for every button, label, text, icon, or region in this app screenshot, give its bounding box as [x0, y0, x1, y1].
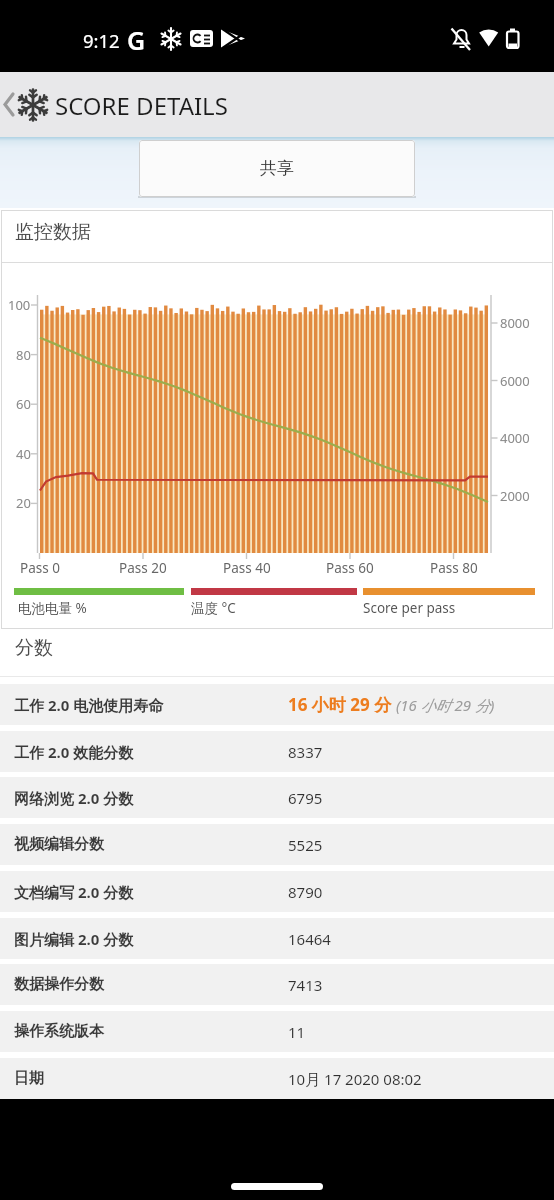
button[interactable]: 视频编辑分数 — [0, 824, 554, 865]
staticText: 8790 — [288, 882, 323, 902]
staticText: 9:12 — [83, 28, 120, 53]
staticText: 8000 — [500, 314, 530, 332]
staticText: 60 — [16, 395, 31, 413]
staticText: 80 — [16, 346, 31, 364]
button[interactable]: 数据操作分数 — [0, 964, 554, 1005]
staticText: 日期 — [14, 1069, 44, 1088]
staticText: 11 — [288, 1022, 306, 1042]
staticText: G — [127, 23, 146, 57]
staticText: Pass 60 — [326, 559, 374, 577]
staticText: SCORE DETAILS — [55, 89, 228, 122]
button[interactable]: 操作系统版本 — [0, 1011, 554, 1052]
staticText: Pass 20 — [119, 559, 167, 577]
button[interactable] — [0, 72, 50, 137]
staticText: 2000 — [500, 487, 530, 505]
staticText: 20 — [16, 494, 31, 512]
staticText: 分数 — [15, 636, 53, 660]
staticText: 16464 — [288, 929, 331, 949]
staticText: 网络浏览 2.0 分数 — [14, 788, 134, 808]
staticText: 文档编写 2.0 分数 — [14, 882, 134, 902]
staticText: 图片编辑 2.0 分数 — [14, 929, 134, 949]
staticText: 数据操作分数 — [14, 975, 104, 994]
staticText: 7413 — [288, 975, 323, 995]
staticText: 操作系统版本 — [14, 1022, 104, 1041]
staticText: 监控数据 — [15, 220, 91, 244]
staticText: Pass 0 — [20, 559, 60, 577]
staticText: (16 小时 29 分) — [392, 695, 495, 715]
staticText: 工作 2.0 效能分数 — [14, 742, 134, 762]
button[interactable]: 工作 2.0 效能分数 — [0, 731, 554, 772]
button[interactable]: 日期 — [0, 1058, 554, 1099]
button[interactable] — [231, 1183, 323, 1190]
staticText: Pass 40 — [223, 559, 271, 577]
staticText: 共享 — [260, 158, 294, 179]
button[interactable]: 文档编写 2.0 分数 — [0, 871, 554, 912]
staticText: 10月 17 2020 08:02 — [288, 1069, 422, 1089]
staticText: 16 小时 29 分 — [288, 693, 392, 716]
staticText: 视频编辑分数 — [14, 835, 104, 854]
staticText: 工作 2.0 电池使用寿命 — [14, 695, 164, 715]
staticText: Score per pass — [363, 599, 456, 617]
staticText: 6000 — [500, 372, 530, 390]
staticText: 100 — [8, 296, 31, 314]
staticText: 40 — [16, 445, 31, 463]
button[interactable]: 网络浏览 2.0 分数 — [0, 777, 554, 818]
staticText: 电池电量 % — [18, 599, 87, 617]
staticText: 8337 — [288, 742, 323, 762]
button[interactable]: 图片编辑 2.0 分数 — [0, 918, 554, 959]
staticText: 4000 — [500, 429, 530, 447]
staticText: Pass 80 — [430, 559, 478, 577]
staticText: 6795 — [288, 788, 323, 808]
button[interactable]: 工作 2.0 电池使用寿命 — [0, 684, 554, 725]
staticText: 温度 °C — [191, 599, 236, 617]
button[interactable]: 共享 — [139, 140, 415, 197]
staticText: 5525 — [288, 835, 323, 855]
